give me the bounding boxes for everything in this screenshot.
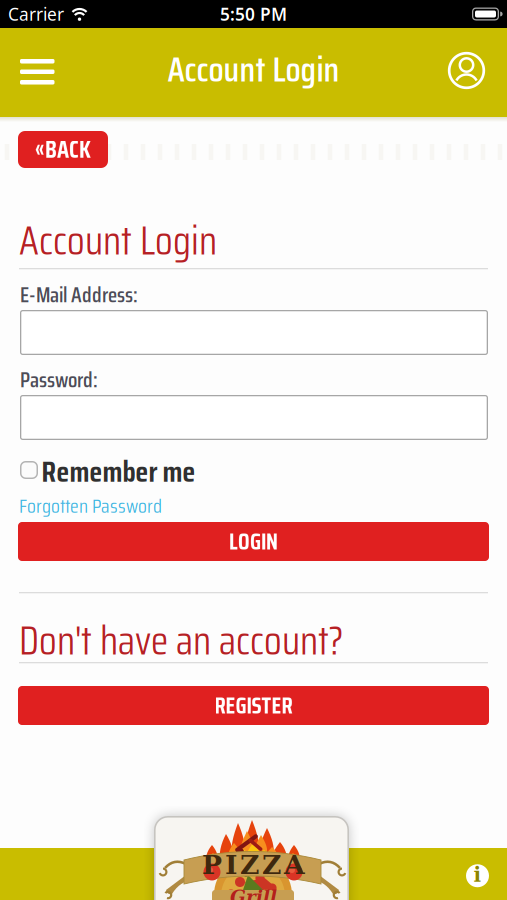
button[interactable]: REGISTER (18, 686, 489, 725)
button[interactable]: Menu (20, 59, 54, 84)
staticText: Carrier (8, 2, 64, 26)
button[interactable]: Remember me (20, 448, 195, 495)
button[interactable]: LOGIN (18, 522, 489, 561)
staticText: Password: (20, 363, 98, 397)
button[interactable]: Account (447, 51, 485, 89)
staticText: Forgotten Password (19, 490, 162, 521)
staticText: Account Login (19, 209, 217, 272)
staticText: Remember me (41, 448, 195, 495)
staticText: E-Mail Address: (20, 278, 138, 312)
staticText: Don't have an account? (19, 609, 343, 672)
staticText: 5:50 PM (220, 2, 287, 26)
staticText: i (473, 863, 481, 886)
staticText: Account Login (167, 42, 339, 97)
staticText: LOGIN (229, 524, 278, 559)
staticText: PIZZA (202, 849, 305, 880)
button[interactable]: Info (466, 864, 489, 887)
staticText: REGISTER (214, 688, 292, 723)
staticText: Grill (230, 886, 277, 900)
button[interactable]: «BACK (18, 131, 108, 168)
staticText: «BACK (35, 131, 91, 168)
button[interactable]: Forgotten Password (19, 490, 162, 521)
